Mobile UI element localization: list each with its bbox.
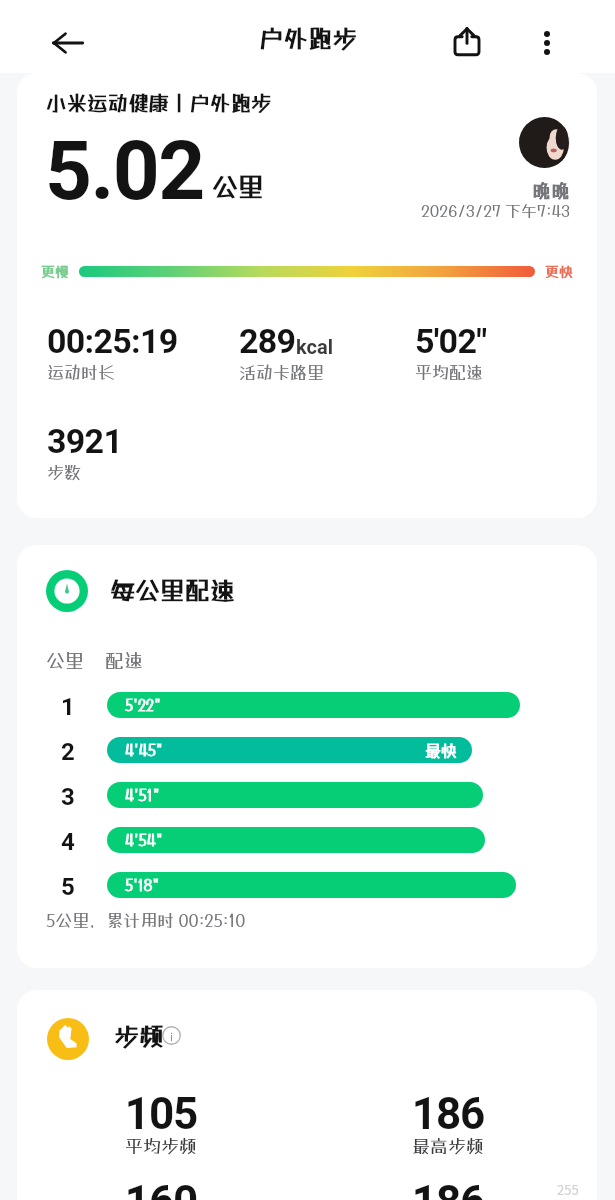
staticText: 2026/3/27 下午7:43 xyxy=(370,201,570,220)
staticText: 步频 xyxy=(114,1021,165,1050)
staticText: 步数 xyxy=(47,462,81,482)
staticText: 5公里，累计用时 00:25:10 xyxy=(46,910,246,930)
staticText: 户外跑步 xyxy=(259,24,357,53)
staticText: 4'54" xyxy=(125,831,163,849)
staticText: kcal xyxy=(296,335,333,358)
staticText: 5.02 xyxy=(45,123,204,219)
staticText: 更慢 xyxy=(41,263,69,280)
staticText: 公里 xyxy=(212,171,265,202)
staticText: 4 xyxy=(61,828,75,856)
staticText: 晩晩 xyxy=(470,179,570,201)
staticText: 公里 xyxy=(46,649,85,671)
staticText: 105 xyxy=(61,1088,261,1140)
button[interactable]: More options xyxy=(525,21,569,65)
staticText: 5'22" xyxy=(125,696,161,714)
staticText: 活动卡路里 xyxy=(239,362,324,382)
staticText: 5'18" xyxy=(125,876,160,894)
staticText: 最高步频 xyxy=(348,1135,548,1156)
staticText: 运动时长 xyxy=(47,362,115,382)
staticText: 5 xyxy=(61,873,75,901)
staticText: 186 xyxy=(348,1088,548,1140)
staticText: 2 xyxy=(61,738,75,766)
staticText: 4'51" xyxy=(125,786,160,804)
staticText: 1 xyxy=(61,693,75,721)
staticText: 平均配速 xyxy=(415,362,483,382)
staticText: 每公里配速 xyxy=(110,575,236,604)
staticText: 更快 xyxy=(545,263,573,280)
staticText: 配速 xyxy=(105,649,144,671)
staticText: i xyxy=(170,1028,174,1044)
staticText: 289 xyxy=(239,321,296,361)
staticText: 160 xyxy=(61,1176,261,1200)
staticText: 186 xyxy=(348,1176,548,1200)
button[interactable]: Back xyxy=(48,23,88,63)
button[interactable]: Share xyxy=(445,19,489,63)
staticText: 最快 xyxy=(425,741,458,760)
staticText: 3 xyxy=(61,783,75,811)
staticText: 3921 xyxy=(47,421,123,461)
staticText: 00:25:19 xyxy=(47,321,178,361)
staticText: 4'45" xyxy=(125,741,163,759)
staticText: 5'02" xyxy=(415,321,487,361)
staticText: 平均步频 xyxy=(61,1135,261,1156)
staticText: 小米运动健康丨户外跑步 xyxy=(46,91,272,115)
staticText: 255 xyxy=(557,1180,579,1199)
